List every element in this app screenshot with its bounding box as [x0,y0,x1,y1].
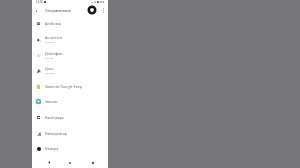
staticText: Альбомы [45,21,62,26]
staticText: 17,3 МБ [45,71,55,74]
button[interactable]: Обзор [87,157,98,168]
staticText: Ассистент [45,35,63,40]
button[interactable]: Аккаунт [86,4,97,15]
button[interactable]: Альбомы [32,15,108,31]
staticText: Звонки [45,99,58,104]
button[interactable]: Назад [32,6,41,15]
button[interactable]: Камера [32,140,108,156]
staticText: 912 КБ [45,56,54,59]
staticText: Калькулятор [45,131,67,136]
button[interactable]: Диктофон [32,47,108,63]
button[interactable]: Заметки Google Keep [32,78,108,94]
staticText: 14:28 [36,0,43,4]
staticText: Отправленные [45,8,71,13]
button[interactable]: Календарь [32,109,108,125]
staticText: Календарь [45,115,64,120]
button[interactable]: Ещё [99,6,108,15]
button[interactable]: Диск [32,62,108,78]
button[interactable]: Калькулятор [32,125,108,141]
staticText: Заметки Google Keep [45,84,83,89]
button[interactable]: Главный экран [64,157,75,168]
button[interactable]: Ассистент [32,31,108,47]
staticText: Диктофон [45,51,63,56]
staticText: 3,84 МБ [45,40,55,43]
button[interactable]: Назад [43,157,54,168]
staticText: Диск [45,66,54,71]
button[interactable]: Звонки [32,93,108,109]
staticText: Камера [45,146,59,151]
